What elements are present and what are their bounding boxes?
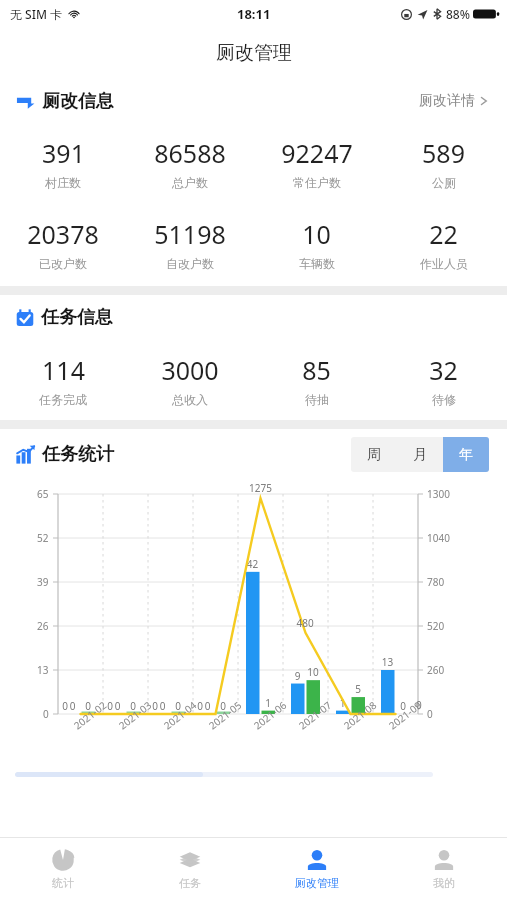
- button[interactable]: 10: [253, 215, 380, 273]
- staticText: 18:11: [237, 5, 271, 23]
- staticText: 22: [429, 217, 458, 251]
- button[interactable]: 月: [397, 437, 443, 472]
- button[interactable]: 86588: [126, 134, 253, 192]
- staticText: 无 SIM 卡: [10, 6, 63, 22]
- staticText: 作业人员: [420, 256, 468, 271]
- staticText: 589: [422, 136, 465, 170]
- staticText: 公厕: [432, 175, 456, 190]
- staticText: 391: [42, 136, 85, 170]
- button[interactable]: 114: [0, 351, 126, 409]
- staticText: 85: [302, 353, 331, 387]
- button[interactable]: 22: [380, 215, 507, 273]
- staticText: 厕改信息: [42, 90, 114, 113]
- staticText: 统计: [52, 876, 74, 890]
- staticText: 88%: [446, 6, 470, 22]
- staticText: 周: [367, 446, 381, 464]
- button[interactable]: 391: [0, 134, 126, 192]
- staticText: 待抽: [305, 392, 329, 407]
- staticText: 任务信息: [41, 306, 113, 329]
- button[interactable]: 3000: [126, 351, 253, 409]
- staticText: 任务完成: [39, 392, 87, 407]
- button[interactable]: 任务: [126, 838, 253, 900]
- staticText: 51198: [154, 217, 226, 251]
- button[interactable]: 51198: [126, 215, 253, 273]
- staticText: 32: [429, 353, 458, 387]
- staticText: 114: [42, 353, 85, 387]
- button[interactable]: 厕改详情: [417, 86, 491, 116]
- button[interactable]: 周: [351, 437, 397, 472]
- staticText: 车辆数: [299, 256, 335, 271]
- button[interactable]: 92247: [253, 134, 380, 192]
- staticText: 厕改详情: [419, 92, 475, 110]
- button[interactable]: 32: [380, 351, 507, 409]
- staticText: 总收入: [172, 392, 208, 407]
- button[interactable]: 20378: [0, 215, 126, 273]
- staticText: 3000: [161, 353, 219, 387]
- staticText: 10: [302, 217, 331, 251]
- staticText: 任务统计: [42, 443, 114, 466]
- staticText: 村庄数: [45, 175, 81, 190]
- staticText: 月: [413, 446, 427, 464]
- staticText: 已改户数: [39, 256, 87, 271]
- button[interactable]: 厕改管理: [253, 838, 380, 900]
- staticText: 92247: [281, 136, 353, 170]
- staticText: 总户数: [172, 175, 208, 190]
- staticText: 常住户数: [293, 175, 341, 190]
- staticText: 年: [459, 446, 473, 464]
- staticText: 20378: [27, 217, 99, 251]
- staticText: 任务: [179, 876, 201, 890]
- staticText: 厕改管理: [295, 876, 339, 890]
- staticText: 自改户数: [166, 256, 214, 271]
- button[interactable]: 我的: [380, 838, 507, 900]
- button[interactable]: 统计: [0, 838, 126, 900]
- button[interactable]: 589: [380, 134, 507, 192]
- button[interactable]: 年: [443, 437, 489, 472]
- staticText: 厕改管理: [216, 41, 292, 65]
- button[interactable]: 85: [253, 351, 380, 409]
- staticText: 我的: [433, 876, 455, 890]
- staticText: 待修: [432, 392, 456, 407]
- staticText: 86588: [154, 136, 226, 170]
